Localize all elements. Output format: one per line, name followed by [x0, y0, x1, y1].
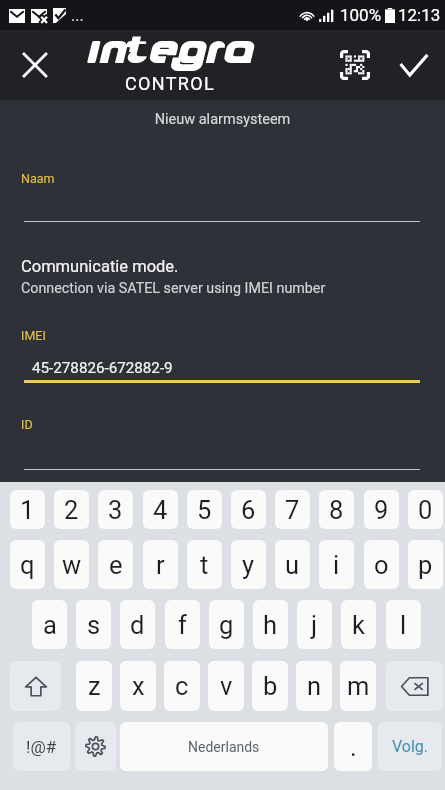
- staticText: z: [88, 671, 101, 701]
- staticText: Communicatie mode.: [21, 257, 179, 276]
- button[interactable]: h: [253, 600, 288, 649]
- staticText: 1: [20, 495, 35, 525]
- staticText: a: [43, 610, 57, 640]
- staticText: 5: [197, 495, 212, 525]
- staticText: 6: [241, 495, 256, 525]
- button[interactable]: k: [341, 600, 376, 649]
- button[interactable]: Space: [120, 722, 328, 771]
- staticText: ID: [21, 417, 33, 432]
- button[interactable]: q: [10, 540, 45, 589]
- button[interactable]: x: [120, 661, 156, 711]
- staticText: 4: [153, 495, 168, 525]
- staticText: CONTROL: [125, 73, 216, 94]
- staticText: c: [175, 671, 189, 701]
- button[interactable]: 7: [275, 490, 310, 529]
- staticText: 12:13: [398, 5, 441, 25]
- staticText: w: [62, 550, 82, 580]
- button[interactable]: Symbols: [13, 722, 70, 771]
- button[interactable]: v: [208, 661, 244, 711]
- button[interactable]: r: [143, 540, 178, 589]
- staticText: s: [87, 610, 101, 640]
- staticText: 7: [285, 495, 300, 525]
- button[interactable]: l: [386, 600, 421, 649]
- button[interactable]: d: [120, 600, 155, 649]
- button[interactable]: Shift: [10, 661, 61, 711]
- staticText: r: [156, 550, 165, 580]
- button[interactable]: 2: [54, 490, 89, 529]
- staticText: x: [132, 671, 145, 701]
- button[interactable]: p: [408, 540, 443, 589]
- staticText: e: [109, 550, 123, 580]
- staticText: g: [219, 610, 234, 640]
- button[interactable]: 5: [187, 490, 222, 529]
- button[interactable]: w: [54, 540, 89, 589]
- staticText: Nederlands: [188, 739, 260, 755]
- button[interactable]: y: [231, 540, 266, 589]
- button[interactable]: 4: [143, 490, 178, 529]
- button[interactable]: s: [76, 600, 111, 649]
- staticText: n: [307, 671, 322, 701]
- button[interactable]: n: [296, 661, 332, 711]
- staticText: h: [263, 610, 278, 640]
- staticText: p: [418, 550, 433, 580]
- staticText: !@#: [26, 737, 57, 757]
- staticText: q: [20, 550, 35, 580]
- staticText: u: [285, 550, 300, 580]
- staticText: 8: [329, 495, 344, 525]
- staticText: y: [242, 550, 255, 580]
- staticText: o: [374, 550, 389, 580]
- staticText: IMEI: [21, 328, 46, 343]
- staticText: 100%: [340, 5, 382, 25]
- staticText: 45-278826-672882-9: [32, 359, 173, 377]
- staticText: i: [333, 550, 340, 580]
- staticText: j: [311, 610, 318, 640]
- button[interactable]: Scan QR code: [331, 41, 379, 89]
- button[interactable]: g: [209, 600, 244, 649]
- button[interactable]: z: [76, 661, 112, 711]
- button[interactable]: i: [319, 540, 354, 589]
- button[interactable]: 9: [364, 490, 399, 529]
- staticText: m: [347, 671, 370, 701]
- button[interactable]: e: [98, 540, 133, 589]
- staticText: Volg.: [392, 737, 429, 756]
- button[interactable]: o: [364, 540, 399, 589]
- staticText: b: [263, 671, 278, 701]
- staticText: Nieuw alarmsysteem: [0, 111, 445, 128]
- button[interactable]: Close: [13, 43, 57, 87]
- staticText: l: [400, 610, 407, 640]
- button[interactable]: j: [297, 600, 332, 649]
- staticText: Connection via SATEL server using IMEI n…: [21, 280, 326, 297]
- button[interactable]: 3: [98, 490, 133, 529]
- button[interactable]: Period: [334, 722, 372, 771]
- button[interactable]: b: [252, 661, 288, 711]
- staticText: 3: [108, 495, 123, 525]
- staticText: v: [220, 671, 233, 701]
- staticText: ...: [71, 6, 84, 25]
- staticText: Naam: [21, 171, 55, 186]
- button[interactable]: a: [32, 600, 67, 649]
- button[interactable]: 8: [319, 490, 354, 529]
- button[interactable]: u: [275, 540, 310, 589]
- button[interactable]: f: [165, 600, 200, 649]
- staticText: k: [352, 610, 365, 640]
- button[interactable]: 1: [10, 490, 45, 529]
- staticText: t: [200, 550, 209, 580]
- staticText: .: [350, 732, 357, 762]
- staticText: 9: [374, 495, 389, 525]
- button[interactable]: Keyboard settings: [75, 722, 116, 771]
- button[interactable]: m: [340, 661, 376, 711]
- button[interactable]: Confirm: [390, 41, 438, 89]
- staticText: f: [178, 610, 187, 640]
- button[interactable]: c: [164, 661, 200, 711]
- staticText: d: [130, 610, 145, 640]
- button[interactable]: 0: [408, 490, 443, 529]
- button[interactable]: Backspace: [386, 661, 443, 711]
- staticText: 0: [418, 495, 433, 525]
- button[interactable]: 6: [231, 490, 266, 529]
- button[interactable]: t: [187, 540, 222, 589]
- staticText: 2: [64, 495, 79, 525]
- button[interactable]: Volg.: [378, 722, 442, 771]
